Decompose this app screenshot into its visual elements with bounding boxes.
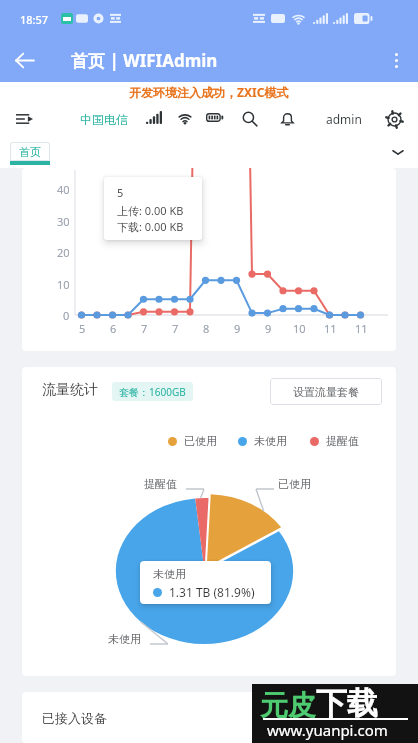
staticText: 10 bbox=[57, 277, 70, 292]
staticText: 首页 | WIFIAdmin bbox=[71, 49, 218, 72]
staticText: 下载: 0.00 KB bbox=[117, 219, 184, 234]
staticText: 套餐：1600GB bbox=[119, 385, 186, 399]
button[interactable]: 设置流量套餐 bbox=[270, 378, 382, 405]
staticText: 8 bbox=[203, 321, 210, 336]
staticText: 9 bbox=[265, 321, 272, 336]
staticText: 11 bbox=[355, 321, 368, 336]
button[interactable]: Search bbox=[238, 102, 262, 136]
button[interactable]: 中国电信 bbox=[80, 102, 128, 136]
staticText: 已使用 bbox=[184, 434, 217, 448]
staticText: 未使用 bbox=[153, 567, 186, 581]
staticText: 18:57 bbox=[20, 12, 49, 27]
button[interactable]: 提醒值 bbox=[310, 434, 359, 448]
staticText: 提醒值 bbox=[144, 477, 177, 491]
staticText: 下载 bbox=[316, 684, 378, 723]
staticText: 40 bbox=[57, 182, 70, 197]
staticText: 0 bbox=[63, 308, 70, 323]
button[interactable]: Notifications bbox=[275, 102, 299, 136]
button[interactable]: Menu bbox=[12, 102, 36, 136]
staticText: 已接入设备 bbox=[42, 710, 107, 726]
staticText: 10 bbox=[293, 321, 306, 336]
staticText: 流量统计 bbox=[42, 381, 98, 399]
button[interactable]: 已使用 bbox=[168, 434, 217, 448]
staticText: 6 bbox=[110, 321, 117, 336]
staticText: 9 bbox=[234, 321, 241, 336]
staticText: 中国电信 bbox=[80, 112, 128, 127]
staticText: 7 bbox=[172, 321, 179, 336]
staticText: 未使用 bbox=[108, 632, 141, 646]
staticText: 首页 bbox=[19, 145, 41, 159]
button[interactable]: Expand tabs bbox=[386, 140, 410, 164]
button[interactable]: 首页 bbox=[10, 142, 50, 165]
staticText: 5 bbox=[117, 185, 124, 200]
staticText: www.yuanpi.com bbox=[267, 720, 388, 740]
button[interactable]: admin bbox=[326, 102, 362, 136]
staticText: 已使用 bbox=[278, 477, 311, 491]
staticText: 元皮 bbox=[260, 688, 316, 723]
staticText: 11 bbox=[324, 321, 337, 336]
staticText: 设置流量套餐 bbox=[293, 385, 359, 399]
button[interactable]: Settings bbox=[382, 102, 406, 136]
staticText: 1.31 TB (81.9%) bbox=[169, 584, 255, 600]
staticText: 7 bbox=[141, 321, 148, 336]
staticText: admin bbox=[326, 111, 362, 127]
staticText: 上传: 0.00 KB bbox=[117, 203, 184, 218]
staticText: 20 bbox=[57, 245, 70, 260]
staticText: 未使用 bbox=[254, 434, 287, 448]
button[interactable]: Back bbox=[0, 38, 48, 82]
button[interactable]: 未使用 bbox=[238, 434, 287, 448]
button[interactable]: More options bbox=[374, 38, 418, 82]
staticText: 5 bbox=[79, 321, 86, 336]
staticText: 提醒值 bbox=[326, 434, 359, 448]
staticText: 30 bbox=[57, 214, 70, 229]
staticText: 开发环境注入成功，ZXIC模式 bbox=[129, 84, 289, 100]
